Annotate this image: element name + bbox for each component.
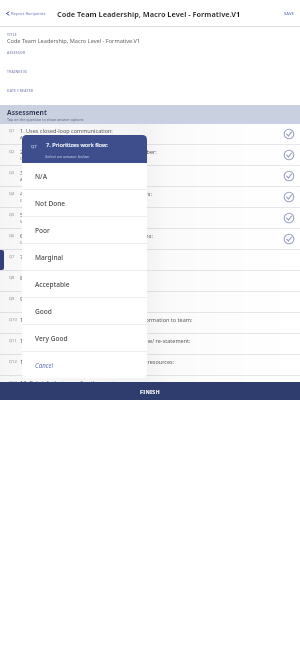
staticText: Q8 <box>9 275 15 280</box>
staticText: FINISH <box>140 388 161 395</box>
staticText: N/A <box>35 172 47 181</box>
staticText: TRAINEE(S) <box>7 69 28 74</box>
staticText: Q10 <box>9 317 17 322</box>
other: Answered <box>283 128 295 140</box>
staticText: 5. Calls for help early when needed: <box>20 211 112 218</box>
staticText: Select an answer below <box>45 153 90 159</box>
staticText: Good <box>20 156 31 162</box>
button[interactable]: Report Recipients <box>3 0 48 27</box>
staticText: Not Done <box>35 199 66 208</box>
button[interactable]: Cancel <box>22 352 147 378</box>
staticText: Q12 <box>9 359 17 364</box>
staticText: 13. Debriefs the team after the event: <box>20 379 117 386</box>
staticText: 6. Maintains situational awareness of al… <box>20 232 153 239</box>
staticText: Poor <box>35 226 50 235</box>
staticText: Q6 <box>9 233 15 238</box>
staticText: Good <box>20 198 31 204</box>
staticText: Q2 <box>9 149 15 154</box>
other: Answered <box>283 170 295 182</box>
staticText: SAVE <box>284 11 294 17</box>
staticText: 4. Distributes the workload among team m… <box>20 190 152 197</box>
staticText: Q7 <box>31 144 37 150</box>
staticText: Q9 <box>9 296 15 301</box>
button[interactable]: Q4 <box>0 187 300 208</box>
button[interactable]: Marginal <box>22 244 147 270</box>
staticText: Q7 <box>9 254 15 259</box>
staticText: 12. Uses all of the available informatio… <box>20 358 175 365</box>
other: Answered <box>283 233 295 245</box>
staticText: DATE CREATED <box>7 88 34 93</box>
button[interactable]: Q5 <box>0 208 300 229</box>
button[interactable]: Q10 <box>0 313 300 334</box>
button[interactable]: Very Good <box>22 325 147 351</box>
staticText: TITLE <box>7 32 17 37</box>
button[interactable]: Q13 <box>0 376 300 397</box>
staticText: Very Good <box>35 334 68 343</box>
staticText: Q5 <box>9 212 15 217</box>
staticText: Q4 <box>9 191 15 196</box>
staticText: 3. Allocates attention appropriately to … <box>20 169 134 176</box>
button[interactable]: Q11 <box>0 334 300 355</box>
button[interactable]: SAVE <box>278 6 300 22</box>
staticText: 11. Confirms the reception of all the or… <box>20 337 191 344</box>
staticText: Q3 <box>9 170 15 175</box>
staticText: Good <box>35 307 52 316</box>
staticText: Report Recipients <box>11 11 46 17</box>
staticText: 8. Re-evaluates the plan of action frequ… <box>20 274 135 281</box>
button[interactable]: Q7 <box>0 250 300 271</box>
other: Answered <box>283 149 295 161</box>
staticText: Code Team Leadership, Macro Level - Form… <box>7 37 140 45</box>
button[interactable]: Q9 <box>0 292 300 313</box>
button[interactable]: Q12 <box>0 355 300 376</box>
staticText: Acceptable <box>35 280 70 289</box>
button[interactable]: Q3 <box>0 166 300 187</box>
button[interactable]: Q8 <box>0 271 300 292</box>
button[interactable]: N/A <box>22 163 147 189</box>
staticText: Cancel <box>35 361 54 369</box>
staticText: Assessment <box>7 108 47 117</box>
staticText: Q13 <box>9 380 17 385</box>
staticText: 2. Assigns roles and responsibilities to… <box>20 148 157 155</box>
button[interactable]: Good <box>22 298 147 324</box>
staticText: Acceptable <box>20 177 42 183</box>
staticText: ASSESSOR <box>7 50 26 55</box>
button[interactable]: Acceptable <box>22 271 147 297</box>
staticText: Very Good <box>20 219 41 225</box>
staticText: Code Team Leadership, Macro Level - Form… <box>57 9 241 19</box>
staticText: Marginal <box>35 253 64 262</box>
staticText: 1. Uses closed-loop communication: <box>20 127 113 134</box>
staticText: 7. Prioritizes work flow: <box>20 253 80 260</box>
button[interactable]: Q2 <box>0 145 300 166</box>
staticText: Good <box>20 240 31 246</box>
button[interactable]: Not Done <box>22 190 147 216</box>
other: Answered <box>283 212 295 224</box>
button[interactable]: FINISH <box>0 382 300 400</box>
staticText: Tap on the question to show answer optio… <box>7 117 84 122</box>
staticText: Acceptable <box>20 135 42 141</box>
button[interactable]: Poor <box>22 217 147 243</box>
staticText: Q1 <box>9 128 15 133</box>
staticText: 9. Summarizes the status of the patient: <box>20 295 123 302</box>
other: Answered <box>283 191 295 203</box>
button[interactable]: Q6 <box>0 229 300 250</box>
button[interactable]: Q1 <box>0 124 300 145</box>
staticText: 10. Conveys all known, relevant and pert… <box>20 316 193 323</box>
staticText: Q11 <box>9 338 17 343</box>
staticText: 7. Prioritizes work flow: <box>46 141 108 149</box>
